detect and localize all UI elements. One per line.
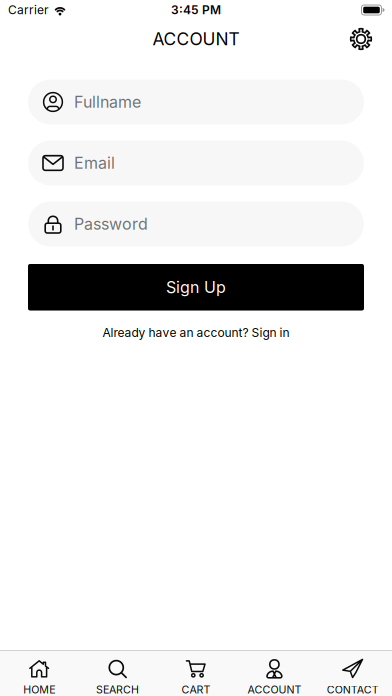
staticText: Already have an account? Sign in <box>102 325 289 340</box>
button[interactable] <box>343 21 379 57</box>
staticText: Sign Up <box>166 278 226 297</box>
staticText: Fullname <box>74 93 141 111</box>
staticText: CART <box>181 683 210 696</box>
staticText: ACCOUNT <box>247 683 301 696</box>
button[interactable]: ACCOUNT <box>235 651 314 696</box>
staticText: Password <box>74 215 148 233</box>
staticText: Email <box>74 154 115 172</box>
staticText: SEARCH <box>96 683 139 696</box>
button[interactable]: Fullname <box>28 79 364 124</box>
button[interactable]: CART <box>157 651 235 696</box>
staticText: CONTACT <box>327 683 379 696</box>
button[interactable]: Email <box>28 140 364 185</box>
button[interactable]: HOME <box>0 651 78 696</box>
staticText: 3:45 PM <box>171 3 221 17</box>
button[interactable]: Already have an account? Sign in <box>102 325 289 340</box>
button[interactable]: SEARCH <box>78 651 157 696</box>
staticText: HOME <box>23 683 55 696</box>
staticText: Carrier <box>8 3 49 17</box>
button[interactable]: Password <box>28 201 364 246</box>
button[interactable]: Sign Up <box>28 264 364 310</box>
button[interactable]: CONTACT <box>314 651 392 696</box>
staticText: ACCOUNT <box>152 29 239 49</box>
